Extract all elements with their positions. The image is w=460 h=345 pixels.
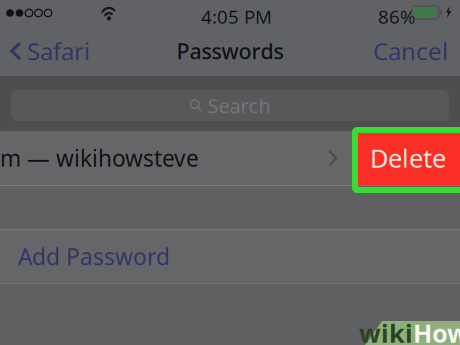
button[interactable]: Search: [11, 90, 449, 121]
staticText: wiki: [359, 316, 413, 345]
staticText: 86%: [378, 4, 416, 29]
staticText: 4:05 PM: [201, 4, 272, 29]
staticText: Safari: [27, 35, 90, 67]
staticText: Search: [207, 92, 270, 119]
button[interactable]: Cancel: [361, 32, 460, 70]
button[interactable]: Add Password: [0, 230, 460, 283]
staticText: Delete: [370, 141, 446, 175]
staticText: How: [413, 316, 460, 345]
button[interactable]: Safari: [0, 32, 98, 70]
button[interactable]: Delete: [356, 131, 460, 185]
staticText: m — wikihowsteve: [0, 143, 199, 173]
staticText: Cancel: [373, 35, 448, 67]
button[interactable]: m — wikihowsteve: [0, 131, 356, 185]
staticText: Add Password: [18, 241, 170, 271]
staticText: Passwords: [176, 37, 283, 65]
